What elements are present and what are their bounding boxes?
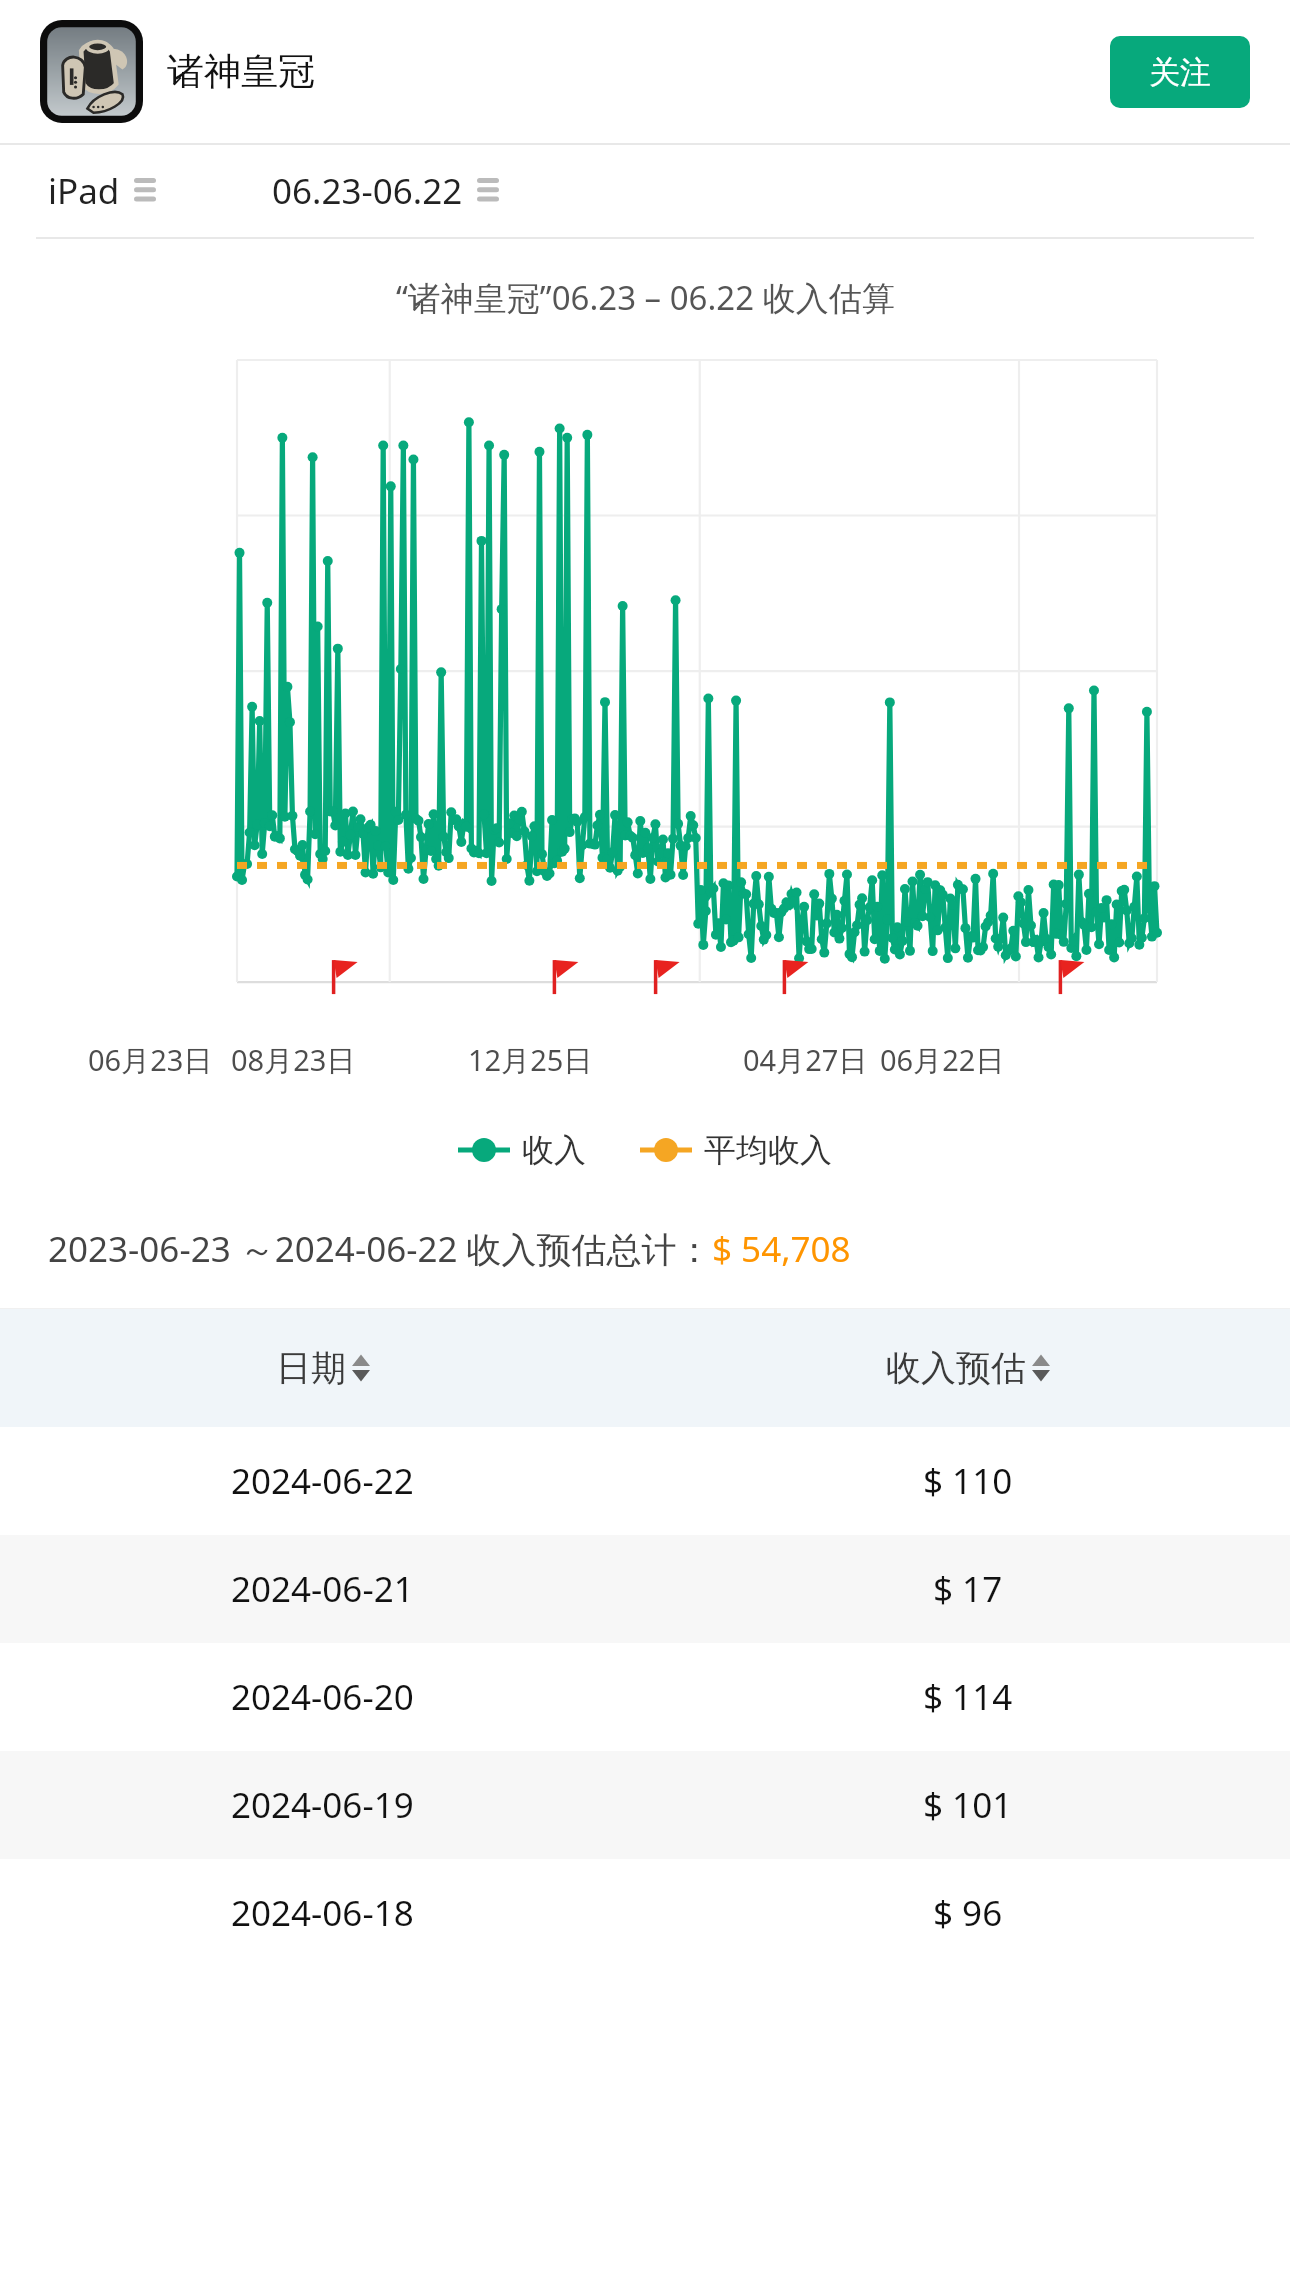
staticText: $ 17 (933, 1565, 1003, 1613)
staticText: 08月23日 (231, 1040, 356, 1080)
staticText: 平均收入 (704, 1130, 832, 1170)
staticText: 诸神皇冠 (167, 48, 315, 95)
button[interactable]: iPad (48, 167, 164, 215)
staticText: $ 54,708 (712, 1225, 851, 1273)
staticText: 2023-06-23 ～2024-06-22 收入预估总计： (48, 1225, 712, 1273)
staticText: 关注 (1149, 53, 1211, 92)
staticText: 收入预估 (886, 1346, 1026, 1390)
button[interactable]: 2024-06-20 (0, 1643, 1290, 1751)
staticText: 04月27日 (743, 1040, 868, 1080)
staticText: 2024-06-19 (231, 1781, 414, 1829)
button[interactable]: 06.23-06.22 (272, 167, 499, 215)
staticText: 2024-06-20 (231, 1673, 414, 1721)
button[interactable]: 2024-06-22 (0, 1427, 1290, 1535)
button[interactable]: 关注 (1110, 36, 1250, 108)
button[interactable]: 平均收入 (640, 1130, 832, 1170)
staticText: 收入 (522, 1130, 586, 1170)
staticText: 12月25日 (468, 1040, 593, 1080)
button[interactable]: 2024-06-18 (0, 1859, 1290, 1967)
staticText: 06月22日 (880, 1040, 1005, 1080)
staticText: 2024-06-18 (231, 1889, 414, 1937)
staticText: $ 101 (923, 1781, 1013, 1829)
staticText: “诸神皇冠”06.23 – 06.22 收入估算 (396, 275, 895, 320)
staticText: 06月23日 (88, 1040, 213, 1080)
staticText: $ 110 (923, 1457, 1013, 1505)
button[interactable]: 收入 (458, 1130, 586, 1170)
staticText: 2024-06-22 (231, 1457, 414, 1505)
staticText: 06.23-06.22 (272, 167, 463, 215)
staticText: $ 114 (923, 1673, 1013, 1721)
button[interactable]: 2024-06-21 (0, 1535, 1290, 1643)
staticText: $ 96 (933, 1889, 1003, 1937)
button[interactable]: 2024-06-19 (0, 1751, 1290, 1859)
staticText: 日期 (276, 1346, 346, 1390)
button[interactable]: 收入预估 (886, 1346, 1050, 1390)
staticText: 2024-06-21 (231, 1565, 414, 1613)
staticText: iPad (48, 167, 120, 215)
button[interactable]: 日期 (276, 1346, 370, 1390)
